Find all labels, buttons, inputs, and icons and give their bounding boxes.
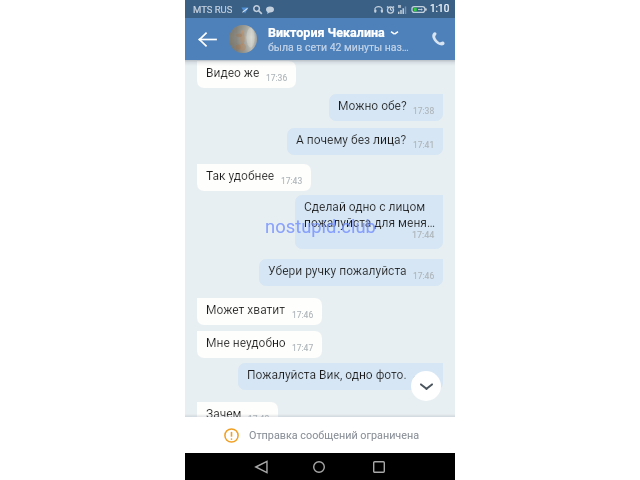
button[interactable]: Call [421,18,455,60]
staticText: nostupid.club [265,216,376,238]
staticText: Убери ручку пожалуйста [268,264,407,278]
staticText: 17:48 [248,414,270,424]
staticText: А почему без лица? [296,133,407,147]
staticText: 17:47 [292,343,314,353]
staticText: 1:10 [430,3,450,15]
staticText: 17:41 [413,140,435,150]
button[interactable]: Сделай одно с лицом пожалуйста для меня… [295,195,443,249]
staticText: 17:38 [413,106,435,116]
button[interactable]: Back [185,18,229,60]
button[interactable]: Убери ручку пожалуйста [259,259,443,286]
staticText: 17:46 [292,310,314,320]
button[interactable]: Мне неудобно [197,331,322,358]
staticText: 17:46 [413,271,435,281]
staticText: Отправка сообщений ограничена [249,429,420,442]
staticText: 17:46 [413,375,435,385]
button[interactable]: Scroll to bottom [411,371,441,401]
button[interactable]: Так удобнее [197,164,311,191]
staticText: Сделай одно с лицом пожалуйста для меня… [304,200,435,230]
staticText: 17:44 [412,230,435,241]
staticText: Мне неудобно [206,336,286,350]
button[interactable]: Можно обе? [329,94,443,121]
staticText: 17:43 [281,176,303,186]
staticText: Видео же [206,66,260,80]
staticText: была в сети 42 минуты наз… [268,41,409,53]
button[interactable]: Back [248,454,274,480]
button[interactable]: Recents [366,454,392,480]
button[interactable]: Зачем [197,402,278,429]
staticText: Так удобнее [206,169,275,183]
button[interactable]: А почему без лица? [287,128,443,155]
staticText: Зачем [206,407,242,421]
staticText: Виктория Чекалина [268,25,385,40]
staticText: MTS RUS [193,4,233,15]
button[interactable]: Home [306,454,332,480]
staticText: Пожалуйста Вик, одно фото. [247,368,407,382]
staticText: Может хватит [206,303,286,317]
staticText: Можно обе? [338,99,407,113]
button[interactable]: Пожалуйста Вик, одно фото. [238,363,443,390]
staticText: 17:36 [266,73,288,83]
button[interactable]: Видео же [197,61,296,88]
button[interactable]: Может хватит [197,298,322,325]
